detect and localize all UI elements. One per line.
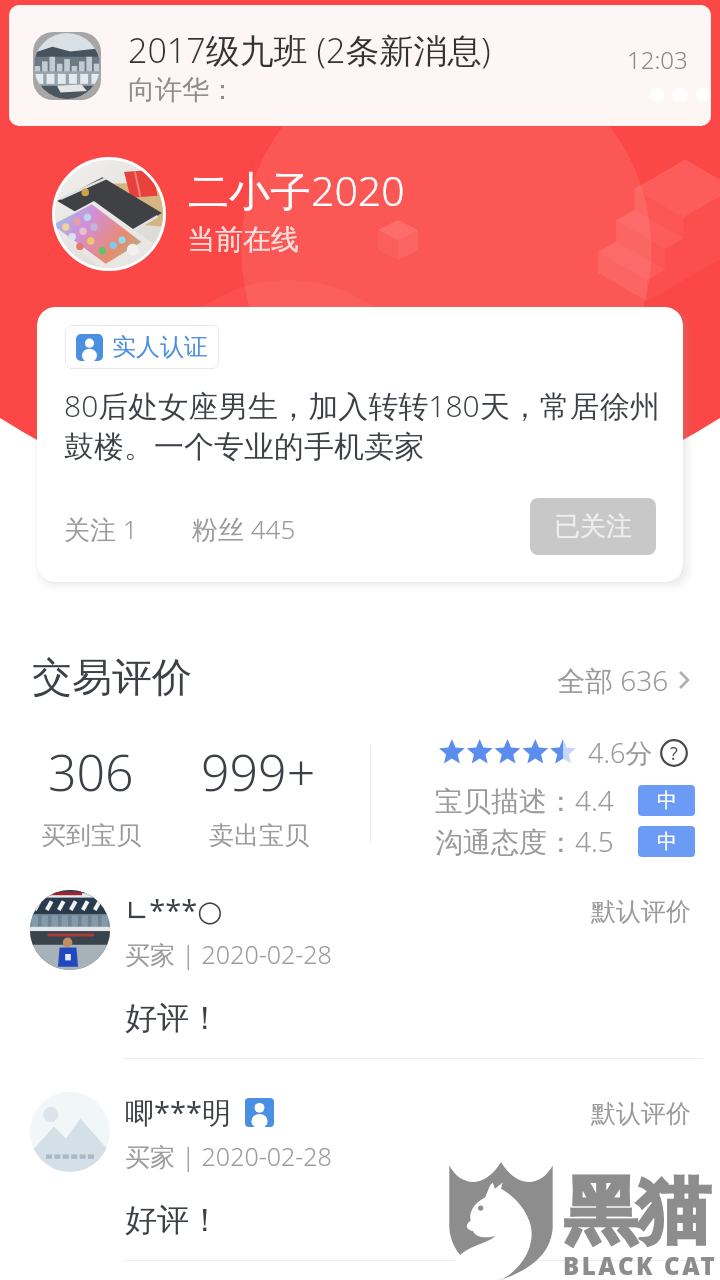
staticText: 唧***明 bbox=[125, 1092, 231, 1132]
staticText: 好评！ bbox=[125, 1200, 221, 1240]
staticText: 沟通态度：4.5 bbox=[435, 822, 614, 860]
staticText: 中 bbox=[657, 788, 677, 813]
staticText: 默认评价 bbox=[591, 1098, 691, 1129]
staticText: 默认评价 bbox=[591, 896, 691, 927]
staticText: 当前在线 bbox=[187, 222, 299, 257]
staticText: 买到宝贝 bbox=[41, 820, 141, 851]
button[interactable]: 唧***明 bbox=[0, 1092, 720, 1274]
button[interactable]: 已关注 bbox=[530, 498, 656, 555]
staticText: 好评！ bbox=[125, 998, 221, 1038]
staticText: 全部 636 bbox=[557, 661, 669, 699]
staticText: 买家 | 2020-02-28 bbox=[125, 937, 332, 971]
staticText: 黑猫 bbox=[564, 1166, 710, 1258]
staticText: 二小子2020 bbox=[188, 162, 405, 218]
staticText: 80后处女座男生，加入转转180天，常居徐州鼓楼。一个专业的手机卖家 bbox=[64, 385, 664, 466]
button[interactable]: 实人认证 bbox=[65, 325, 219, 369]
button[interactable]: 全部 636 bbox=[557, 661, 689, 699]
staticText: 4.6分 bbox=[588, 734, 653, 771]
staticText: 306 bbox=[48, 738, 134, 806]
button[interactable]: Help bbox=[660, 739, 688, 767]
staticText: 卖出宝贝 bbox=[209, 820, 309, 851]
staticText: ∟***○ bbox=[125, 890, 223, 929]
staticText: 999+ bbox=[201, 738, 316, 806]
staticText: 实人认证 bbox=[112, 332, 208, 362]
staticText: 中 bbox=[657, 829, 677, 854]
staticText: 已关注 bbox=[554, 510, 632, 543]
staticText: 12:03 bbox=[627, 43, 688, 76]
staticText: 向许华： bbox=[128, 73, 236, 107]
button[interactable]: ∟***○ bbox=[0, 890, 720, 1072]
staticText: BLACK CAT bbox=[563, 1249, 718, 1280]
staticText: 宝贝描述：4.4 bbox=[435, 781, 614, 819]
staticText: 买家 | 2020-02-28 bbox=[125, 1139, 332, 1173]
staticText: 交易评价 bbox=[32, 652, 192, 702]
staticText: 粉丝 445 bbox=[192, 511, 296, 547]
button[interactable]: 2017级九班 (2条新消息) bbox=[9, 5, 711, 126]
staticText: 关注 1 bbox=[64, 511, 138, 547]
staticText: 2017级九班 (2条新消息) bbox=[128, 27, 491, 73]
staticText: ? bbox=[670, 741, 678, 766]
